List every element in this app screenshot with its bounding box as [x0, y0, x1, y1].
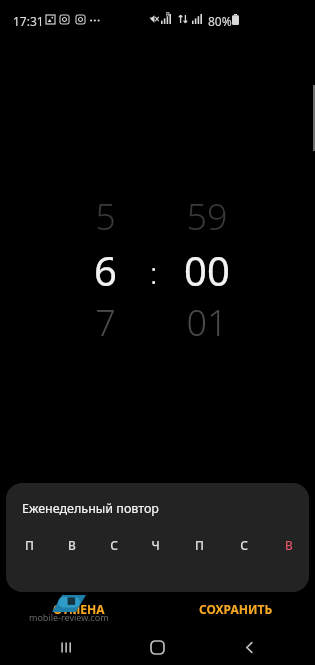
staticText: С: [240, 537, 248, 553]
staticText: 17:31: [13, 13, 44, 29]
staticText: ОТМЕНА: [53, 601, 105, 617]
staticText: 01: [186, 298, 228, 347]
staticText: СОХРАНИТЬ: [199, 601, 273, 617]
button[interactable]: 01: [170, 297, 244, 347]
staticText: П: [25, 537, 34, 553]
button[interactable]: 7: [68, 297, 142, 347]
staticText: П: [195, 537, 204, 553]
button[interactable]: П: [184, 531, 214, 559]
button[interactable]: С: [99, 531, 129, 559]
staticText: В: [68, 537, 76, 553]
button[interactable]: П: [14, 531, 44, 559]
button[interactable]: 59: [170, 191, 244, 241]
button[interactable]: Home: [143, 633, 171, 661]
staticText: В: [285, 537, 293, 553]
button[interactable]: 5: [68, 191, 142, 241]
staticText: 7: [95, 298, 116, 347]
button[interactable]: 6: [68, 243, 142, 293]
staticText: 59: [186, 192, 228, 241]
staticText: 00: [184, 243, 230, 293]
button[interactable]: С: [229, 531, 259, 559]
button[interactable]: 00: [170, 243, 244, 293]
staticText: R: [166, 10, 170, 18]
staticText: Ч: [151, 537, 160, 553]
button[interactable]: СОХРАНИТЬ: [157, 592, 315, 625]
button[interactable]: В: [57, 531, 87, 559]
staticText: С: [110, 537, 118, 553]
staticText: :: [150, 252, 158, 293]
staticText: 5: [95, 192, 116, 241]
button[interactable]: Back: [235, 633, 263, 661]
staticText: Еженедельный повтор: [22, 500, 159, 517]
staticText: 80%: [208, 13, 232, 29]
button[interactable]: ОТМЕНА: [0, 592, 157, 625]
button[interactable]: В: [274, 531, 304, 559]
button[interactable]: Recent apps: [52, 633, 80, 661]
staticText: mobile-review.com: [29, 611, 109, 623]
button[interactable]: Ч: [140, 531, 170, 559]
staticText: 6: [94, 243, 117, 293]
